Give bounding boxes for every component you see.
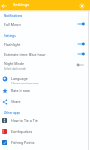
button[interactable]: Brightness	[79, 3, 85, 9]
staticText: Other apps	[4, 111, 21, 115]
staticText: Share	[11, 99, 21, 104]
staticText: Settings	[13, 2, 30, 8]
button[interactable]: Language	[0, 73, 90, 84]
button[interactable]: Share	[0, 96, 90, 107]
staticText: Flashlight	[4, 42, 21, 47]
staticText: Select dark mode	[4, 67, 26, 71]
button[interactable]: Earthquakes	[0, 126, 90, 137]
staticText: Rate it now	[11, 88, 30, 93]
button[interactable]: Back	[1, 3, 7, 9]
button[interactable]: Full Moon	[0, 21, 90, 27]
button[interactable]: Flashlight	[0, 41, 90, 47]
staticText: Earthquakes	[11, 129, 33, 134]
staticText: Fishing Points	[11, 140, 35, 145]
button[interactable]: Estimate time: Blue hour	[0, 51, 90, 57]
staticText: Settings	[4, 34, 16, 38]
staticText: Night Mode	[4, 61, 24, 66]
staticText: How to Tie a Tie	[11, 118, 38, 123]
button[interactable]: Toggle	[76, 20, 88, 28]
staticText: Notifications	[4, 14, 23, 18]
staticText: Full Moon	[4, 22, 21, 27]
staticText: Estimate time: Blue hour	[4, 52, 46, 57]
staticText: Choose app language	[11, 82, 39, 84]
button[interactable]: Rate it now	[0, 85, 90, 96]
button[interactable]: Toggle	[76, 61, 88, 69]
button[interactable]: Fishing Points	[0, 137, 90, 148]
button[interactable]: Toggle	[76, 40, 88, 48]
staticText: Language	[11, 76, 28, 81]
button[interactable]: Toggle	[76, 50, 88, 58]
button[interactable]: Night Mode	[0, 60, 90, 66]
button[interactable]: How to Tie a Tie	[0, 115, 90, 126]
